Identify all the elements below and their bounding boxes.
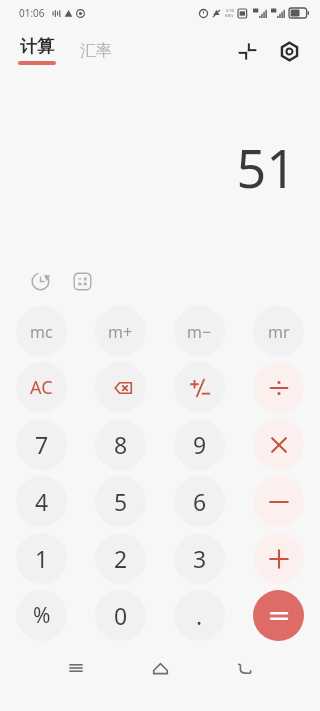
staticText: 01:06 [19,6,45,20]
staticText: 8 [114,429,128,460]
button[interactable]: 1 [16,533,67,584]
button[interactable]: Backspace [95,362,146,413]
staticText: 2 [114,543,128,574]
button[interactable]: Back [202,650,286,686]
staticText: . [196,600,203,631]
staticText: AC [30,375,53,400]
staticText: 汇率 [80,41,112,61]
button[interactable]: Plus minus [174,362,225,413]
button[interactable]: 3 [174,533,225,584]
staticText: 0 [114,600,128,631]
staticText: 4 [35,486,49,517]
staticText: % [33,601,51,630]
button[interactable]: . [174,590,225,641]
staticText: 51 [236,132,296,203]
button[interactable]: 6 [174,476,225,527]
button[interactable]: Scientific [66,265,98,297]
button[interactable]: History [24,265,56,297]
staticText: 9 [193,429,207,460]
button[interactable]: mr [253,306,304,357]
button[interactable]: 汇率 [78,37,114,65]
staticText: 3 [193,543,207,574]
button[interactable]: m+ [95,306,146,357]
staticText: KB/s [225,13,234,18]
button[interactable]: Home [118,650,202,686]
button[interactable]: 8 [95,419,146,470]
button[interactable]: Minus [253,476,304,527]
staticText: mr [268,321,290,343]
button[interactable]: 2 [95,533,146,584]
button[interactable]: Recents [34,650,118,686]
button[interactable]: Settings [274,36,304,66]
staticText: 0.90 [226,8,234,13]
staticText: 计算 [20,36,54,57]
staticText: 5 [114,486,128,517]
button[interactable]: Multiply [253,419,304,470]
staticText: 7 [35,429,49,460]
button[interactable]: Equals [253,590,304,641]
staticText: mc [30,321,53,343]
button[interactable]: Plus [253,533,304,584]
button[interactable]: AC [16,362,67,413]
button[interactable]: Collapse [232,36,262,66]
button[interactable]: 9 [174,419,225,470]
staticText: m− [187,321,212,343]
staticText: 1 [35,543,49,574]
button[interactable]: mc [16,306,67,357]
staticText: m+ [108,321,133,343]
button[interactable]: 0 [95,590,146,641]
button[interactable]: 5 [95,476,146,527]
button[interactable]: 4 [16,476,67,527]
staticText: 6 [193,486,207,517]
button[interactable]: 计算 [16,36,58,65]
button[interactable]: % [16,590,67,641]
button[interactable]: 7 [16,419,67,470]
button[interactable]: m− [174,306,225,357]
button[interactable]: Divide [253,362,304,413]
